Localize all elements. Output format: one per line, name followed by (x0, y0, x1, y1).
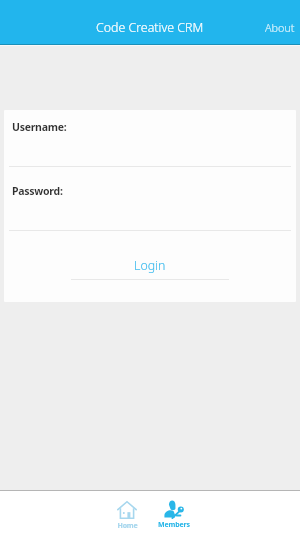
staticText: Members (158, 520, 190, 530)
staticText: Username: (12, 120, 67, 134)
button[interactable]: About (251, 12, 300, 43)
button[interactable]: Members (150, 491, 198, 533)
button[interactable]: Login (4, 257, 296, 280)
button[interactable]: Password input field (4, 167, 296, 231)
button[interactable]: Username input field (4, 110, 296, 167)
staticText: About (265, 20, 295, 35)
staticText: Home (117, 521, 138, 531)
button[interactable]: Home (103, 491, 151, 533)
staticText: Login (134, 257, 166, 274)
staticText: Password: (12, 184, 63, 198)
staticText: Code Creative CRM (96, 19, 204, 36)
